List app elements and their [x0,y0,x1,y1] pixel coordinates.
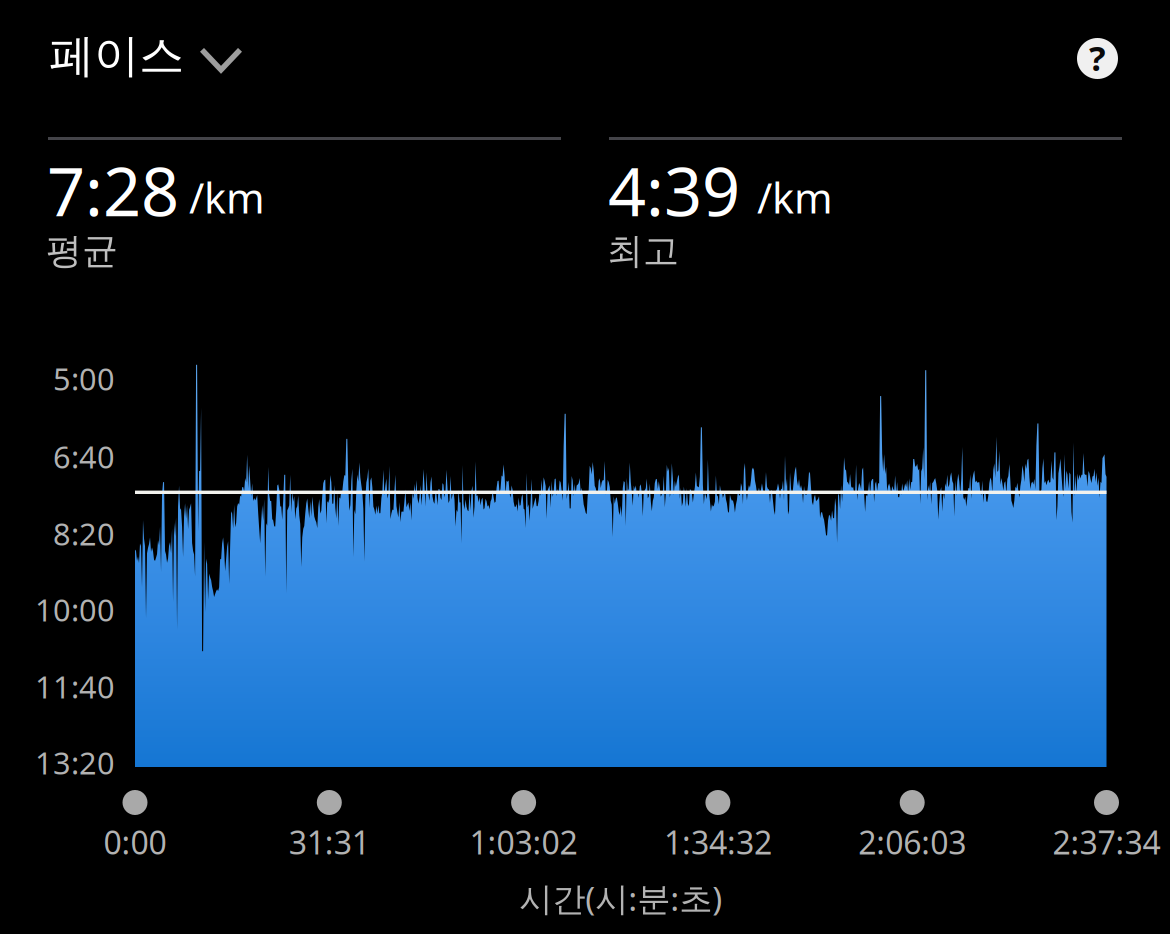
staticText: 1:34:32 [664,821,772,863]
staticText: 평균 [46,229,118,273]
staticText: 10:00 [35,589,115,630]
staticText: 0:00 [103,821,166,863]
staticText: 4:39 [608,146,740,234]
staticText: 페이스 [49,28,184,84]
staticText: 7:28 [47,146,179,234]
button[interactable]: 도움말 [1077,38,1118,79]
staticText: 2:06:03 [858,821,966,863]
staticText: 6:40 [53,436,115,477]
staticText: 1:03:02 [470,821,578,863]
staticText: 시간(시:분:초) [519,876,722,920]
staticText: 13:20 [35,742,115,783]
staticText: 11:40 [35,666,115,707]
staticText: 2:37:34 [1052,821,1160,863]
staticText: /km [189,170,265,225]
staticText: /km [757,170,833,225]
staticText: ? [1089,34,1106,80]
staticText: 최고 [607,229,679,273]
staticText: 5:00 [53,358,115,399]
button[interactable]: 페이스 [47,28,242,84]
staticText: 8:20 [53,513,115,554]
staticText: 31:31 [289,821,370,863]
